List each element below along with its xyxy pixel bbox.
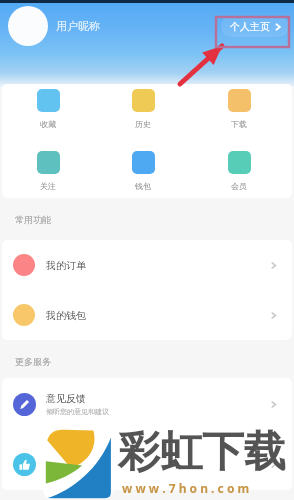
button[interactable]: 我的钱包 [2,290,292,340]
staticText: 常用功能 [15,214,51,225]
staticText: 给个好评 [46,458,269,471]
button[interactable]: Avatar [8,6,48,46]
button[interactable]: 意见反馈 [2,378,292,430]
button[interactable]: 个人主页 [221,16,289,37]
staticText: 用户昵称 [56,19,100,33]
staticText: 下载 [231,119,247,129]
button[interactable]: 收藏 [10,89,86,129]
button[interactable]: 钱包 [105,151,181,191]
staticText: 彩虹下载 [118,426,286,479]
button[interactable]: 给个好评 [2,438,292,490]
button[interactable]: 历史 [105,89,181,129]
staticText: 我的订单 [46,259,269,272]
staticText: 收藏 [40,119,56,129]
button[interactable]: 会员 [201,151,277,191]
staticText: 会员 [231,181,247,191]
staticText: 历史 [135,119,151,129]
button[interactable]: 我的订单 [2,240,292,290]
staticText: 个人主页 [230,20,270,33]
staticText: w w w . 7 h o n . c o m [122,480,250,496]
button[interactable]: 关注 [10,151,86,191]
staticText: 倾听您的意见和建议 [46,407,109,416]
staticText: 关注 [40,181,56,191]
staticText: 更多服务 [15,356,51,367]
staticText: 我的钱包 [46,309,269,322]
staticText: 钱包 [135,181,151,191]
button[interactable]: 下载 [201,89,277,129]
staticText: 意见反馈 [46,392,86,405]
